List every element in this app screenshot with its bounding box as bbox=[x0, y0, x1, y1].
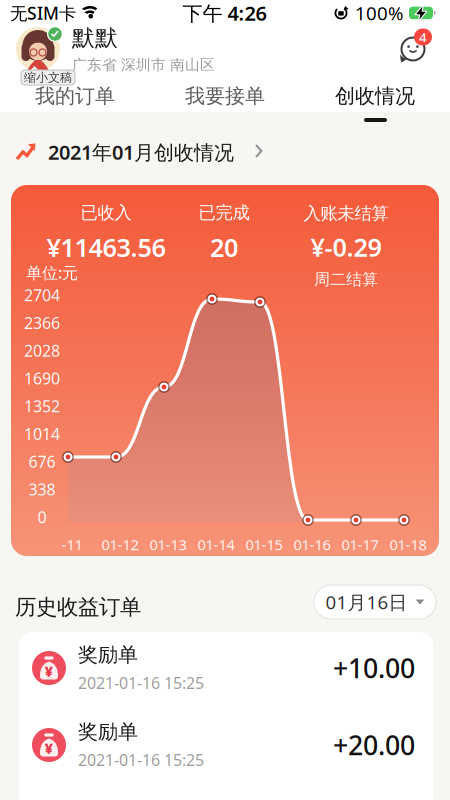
staticText: 奖励单 bbox=[78, 643, 138, 667]
staticText: 奖励单 bbox=[78, 720, 138, 744]
staticText: 我要接单 bbox=[185, 84, 265, 108]
staticText: 下午 4:26 bbox=[182, 0, 266, 26]
button[interactable]: 默默 bbox=[15, 24, 215, 74]
staticText: 周二结算 bbox=[314, 270, 378, 289]
staticText: 1690 bbox=[24, 368, 60, 389]
staticText: 676 bbox=[28, 451, 55, 472]
staticText: 01月16日 bbox=[325, 590, 407, 614]
staticText: +20.00 bbox=[333, 727, 415, 763]
button[interactable]: 2021年01月创收情况 bbox=[16, 139, 263, 165]
staticText: 已收入 bbox=[80, 202, 131, 223]
staticText: 默默 bbox=[72, 24, 118, 52]
staticText: ¥ bbox=[44, 661, 53, 681]
button[interactable]: ¥ bbox=[19, 636, 433, 700]
staticText: 已完成 bbox=[198, 202, 249, 223]
button[interactable]: 01月16日 bbox=[314, 585, 436, 619]
button[interactable]: 我要接单 bbox=[150, 82, 300, 110]
staticText: 入账未结算 bbox=[303, 203, 388, 224]
staticText: 2021-01-16 15:25 bbox=[78, 749, 204, 770]
staticText: 01-12 bbox=[101, 535, 138, 554]
staticText: 2366 bbox=[24, 312, 60, 333]
staticText: 2028 bbox=[24, 340, 60, 361]
staticText: 100% bbox=[355, 1, 404, 25]
button[interactable]: 消息 bbox=[394, 27, 438, 71]
staticText: ¥ bbox=[44, 738, 53, 758]
staticText: 我的订单 bbox=[35, 84, 115, 108]
staticText: ¥-0.29 bbox=[310, 230, 381, 264]
button[interactable]: ¥ bbox=[19, 713, 433, 777]
staticText: 1014 bbox=[24, 423, 60, 444]
staticText: 0 bbox=[37, 506, 46, 528]
staticText: 20 bbox=[210, 230, 238, 264]
staticText: 广东省 深圳市 南山区 bbox=[72, 56, 215, 74]
staticText: 历史收益订单 bbox=[15, 594, 141, 620]
staticText: 2704 bbox=[24, 284, 60, 306]
staticText: 01-17 bbox=[341, 535, 378, 554]
staticText: 创收情况 bbox=[335, 84, 415, 108]
button[interactable]: 创收情况 bbox=[300, 82, 450, 110]
staticText: 1352 bbox=[24, 395, 60, 417]
staticText: -11 bbox=[61, 535, 82, 554]
staticText: 缩小文稿 bbox=[24, 70, 72, 85]
staticText: 2021-01-16 15:25 bbox=[78, 672, 204, 693]
staticText: 4 bbox=[419, 28, 427, 46]
staticText: ¥11463.56 bbox=[46, 230, 165, 264]
staticText: 01-18 bbox=[389, 535, 426, 554]
staticText: 单位:元 bbox=[26, 262, 78, 283]
staticText: 01-16 bbox=[293, 535, 330, 554]
staticText: 01-13 bbox=[149, 535, 186, 554]
staticText: 338 bbox=[28, 479, 55, 500]
staticText: 01-15 bbox=[245, 535, 282, 554]
staticText: 2021年01月创收情况 bbox=[48, 139, 234, 165]
staticText: +10.00 bbox=[333, 650, 415, 686]
staticText: 01-14 bbox=[197, 535, 234, 554]
button[interactable]: 我的订单 bbox=[0, 82, 150, 110]
staticText: 无SIM卡 bbox=[10, 1, 76, 24]
